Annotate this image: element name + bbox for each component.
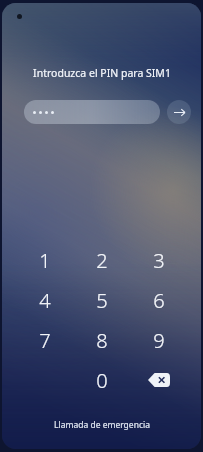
button[interactable]: 0 <box>73 360 130 400</box>
button[interactable]: Aceptar <box>167 100 191 124</box>
button[interactable]: 6 <box>130 280 187 320</box>
staticText: 1 <box>39 247 51 274</box>
button[interactable]: 2 <box>73 240 130 280</box>
staticText: 0 <box>96 367 108 394</box>
button[interactable]: Borrar <box>130 360 187 400</box>
staticText: 2 <box>96 247 108 274</box>
staticText: 8 <box>96 327 108 354</box>
staticText: Introduzca el PIN para SIM1 <box>33 66 171 80</box>
staticText: 9 <box>153 327 165 354</box>
staticText: 3 <box>153 247 165 274</box>
button[interactable]: 8 <box>73 320 130 360</box>
staticText: 7 <box>39 327 51 354</box>
button[interactable]: 7 <box>16 320 73 360</box>
button[interactable]: 3 <box>130 240 187 280</box>
button[interactable]: 1 <box>16 240 73 280</box>
button[interactable] <box>24 100 160 124</box>
staticText: 6 <box>153 287 165 314</box>
button[interactable]: 5 <box>73 280 130 320</box>
button[interactable]: Llamada de emergencia <box>44 414 160 436</box>
staticText: 4 <box>39 287 51 314</box>
button[interactable]: 9 <box>130 320 187 360</box>
staticText: Llamada de emergencia <box>54 419 150 431</box>
button[interactable]: 4 <box>16 280 73 320</box>
staticText: 5 <box>96 287 108 314</box>
